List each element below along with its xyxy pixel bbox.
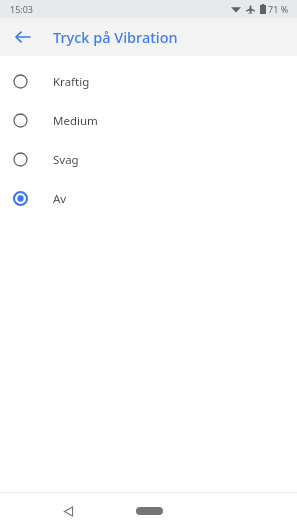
button[interactable]: Back [54,497,82,525]
staticText: 71 % [268,3,289,15]
button[interactable]: Medium [0,101,297,140]
staticText: Svag [53,152,79,168]
button[interactable]: Av [0,179,297,218]
button[interactable]: Svag [0,140,297,179]
staticText: Medium [53,113,98,129]
staticText: Av [53,191,67,207]
staticText: 15:03 [10,3,34,15]
button[interactable]: Home [129,500,169,522]
staticText: Kraftig [53,74,90,90]
button[interactable]: Kraftig [0,62,297,101]
button[interactable]: Back [6,20,40,54]
staticText: Tryck på Vibration [53,27,178,47]
